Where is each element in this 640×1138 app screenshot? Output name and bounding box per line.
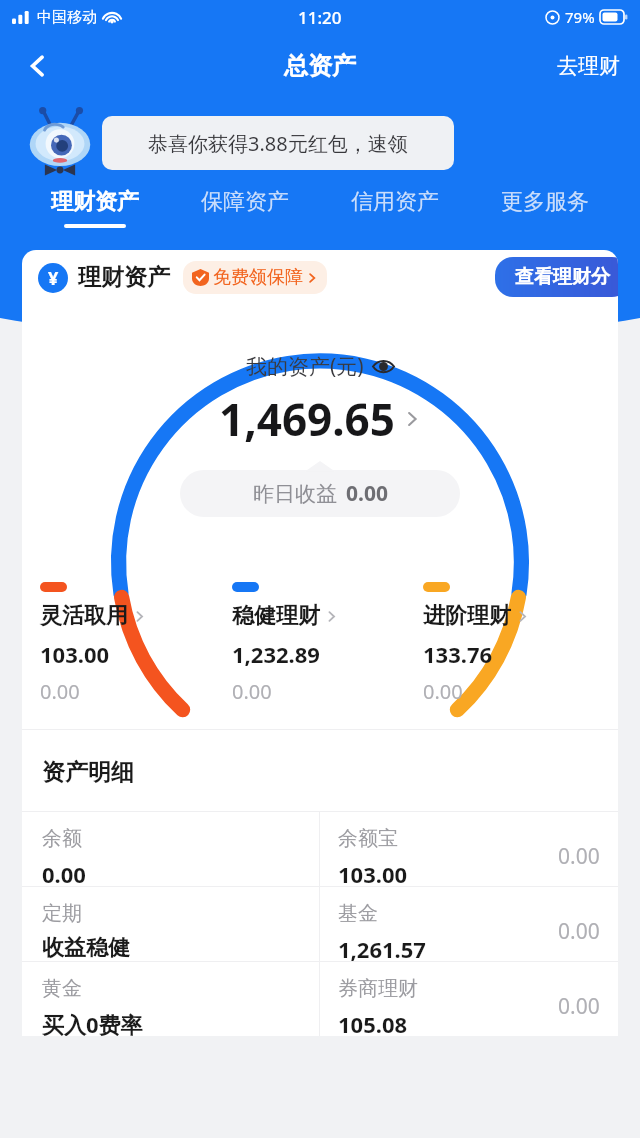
staticText: 1,469.65 bbox=[219, 389, 395, 449]
staticText: 券商理财 bbox=[338, 976, 418, 1001]
button[interactable]: 去理财 bbox=[549, 47, 628, 85]
button[interactable]: 进阶理财 bbox=[423, 582, 614, 705]
staticText: 总资产 bbox=[284, 51, 356, 81]
staticText: 理财资产 bbox=[51, 188, 139, 216]
staticText: 0.00 bbox=[40, 678, 80, 705]
staticText: 理财资产 bbox=[78, 263, 170, 292]
staticText: 黄金 bbox=[42, 976, 82, 1001]
button[interactable]: 昨日收益 bbox=[180, 461, 460, 517]
button[interactable]: Toggle asset visibility bbox=[246, 352, 395, 381]
staticText: 79% bbox=[565, 7, 595, 27]
button[interactable]: 灵活取用 bbox=[40, 582, 232, 705]
button[interactable]: 1,469.65 bbox=[219, 389, 421, 449]
staticText: ¥ bbox=[48, 266, 59, 291]
staticText: 保障资产 bbox=[201, 188, 289, 216]
staticText: 收益稳健 bbox=[42, 934, 130, 961]
button[interactable]: 余额 bbox=[22, 812, 319, 886]
staticText: 133.76 bbox=[423, 639, 493, 669]
staticText: 免费领保障 bbox=[213, 266, 303, 289]
staticText: 0.00 bbox=[423, 678, 463, 705]
button[interactable]: 稳健理财 bbox=[232, 582, 423, 705]
staticText: 稳健理财 bbox=[232, 602, 320, 630]
staticText: 更多服务 bbox=[501, 188, 589, 216]
staticText: 中国移动 bbox=[37, 8, 97, 27]
staticText: 昨日收益 bbox=[253, 481, 337, 507]
button[interactable]: 券商理财 bbox=[320, 962, 618, 1036]
staticText: 0.00 bbox=[558, 917, 600, 946]
staticText: 1,232.89 bbox=[232, 639, 320, 669]
button[interactable]: 恭喜你获得3.88元红包，速领 bbox=[102, 116, 454, 170]
staticText: 进阶理财 bbox=[423, 602, 511, 630]
staticText: 0.00 bbox=[346, 479, 388, 508]
staticText: 基金 bbox=[338, 901, 378, 926]
staticText: 去理财 bbox=[557, 53, 620, 79]
staticText: 0.00 bbox=[558, 992, 600, 1021]
button[interactable]: 信用资产 bbox=[320, 188, 470, 242]
button[interactable]: 基金 bbox=[320, 887, 618, 961]
staticText: 0.00 bbox=[558, 842, 600, 871]
button[interactable]: 保障资产 bbox=[170, 188, 320, 242]
button[interactable]: 更多服务 bbox=[470, 188, 620, 242]
staticText: 0.00 bbox=[42, 859, 86, 886]
staticText: 11:20 bbox=[298, 6, 342, 29]
button[interactable]: 理财资产 bbox=[20, 188, 170, 242]
button[interactable]: 定期 bbox=[22, 887, 319, 961]
button[interactable]: Back bbox=[14, 42, 62, 90]
staticText: 1,261.57 bbox=[338, 934, 426, 961]
staticText: 105.08 bbox=[338, 1009, 408, 1036]
staticText: 信用资产 bbox=[351, 188, 439, 216]
button[interactable]: 余额宝 bbox=[320, 812, 618, 886]
staticText: 查看理财分 bbox=[515, 265, 610, 289]
staticText: 买入0费率 bbox=[42, 1009, 143, 1036]
button[interactable]: 黄金 bbox=[22, 962, 319, 1036]
staticText: 定期 bbox=[42, 901, 82, 926]
staticText: 103.00 bbox=[338, 859, 408, 886]
staticText: 余额宝 bbox=[338, 826, 398, 851]
staticText: 恭喜你获得3.88元红包，速领 bbox=[148, 130, 408, 157]
staticText: 资产明细 bbox=[42, 758, 134, 787]
staticText: 灵活取用 bbox=[40, 602, 128, 630]
staticText: 0.00 bbox=[232, 678, 272, 705]
staticText: 余额 bbox=[42, 826, 82, 851]
button[interactable]: 免费领保障 bbox=[183, 261, 327, 294]
button[interactable]: 查看理财分 bbox=[495, 257, 618, 297]
staticText: 103.00 bbox=[40, 639, 110, 669]
staticText: 我的资产(元) bbox=[246, 352, 364, 381]
